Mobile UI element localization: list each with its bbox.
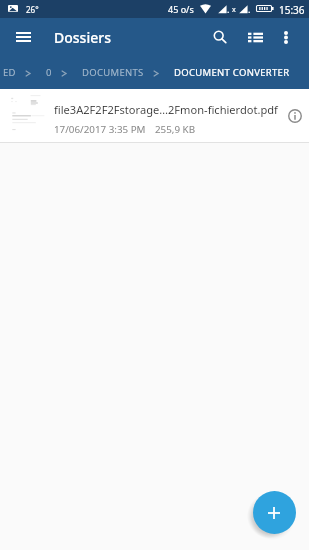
button[interactable]: View list bbox=[238, 18, 273, 56]
button[interactable]: Add bbox=[253, 491, 296, 534]
button[interactable]: ED bbox=[0, 56, 22, 89]
staticText: 45 o/s bbox=[168, 3, 194, 15]
staticText: Dossiers bbox=[54, 28, 111, 47]
staticText: DOCUMENT CONVERTER bbox=[174, 66, 290, 79]
staticText: 15:36 bbox=[279, 3, 305, 17]
button[interactable]: Search bbox=[203, 18, 238, 56]
staticText: file3A2F2F2Fstorage…2Fmon-fichierdot.pdf bbox=[54, 102, 278, 117]
staticText: 0 bbox=[46, 66, 52, 79]
staticText: 255,9 KB bbox=[155, 123, 196, 136]
button[interactable]: 0 bbox=[34, 56, 58, 89]
button[interactable]: More options bbox=[268, 18, 303, 56]
staticText: 26° bbox=[26, 4, 39, 15]
button[interactable]: DOCUMENTS bbox=[70, 56, 150, 89]
button[interactable]: DOCUMENT CONVERTER bbox=[162, 56, 296, 89]
staticText: ED bbox=[3, 66, 16, 79]
button[interactable]: Menu bbox=[0, 18, 47, 56]
staticText: 17/06/2017 3:35 PM bbox=[54, 123, 146, 136]
staticText: x bbox=[232, 5, 236, 15]
button[interactable]: file3A2F2F2Fstorage…2Fmon-fichierdot.pdf bbox=[0, 89, 309, 142]
button[interactable]: Info bbox=[280, 94, 309, 138]
staticText: DOCUMENTS bbox=[82, 66, 144, 79]
